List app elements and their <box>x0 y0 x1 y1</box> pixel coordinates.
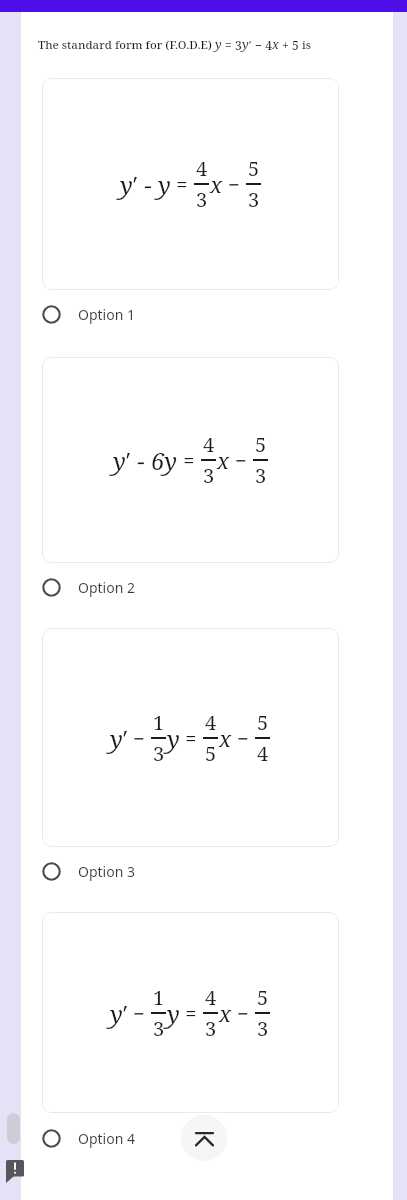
staticText: Option 3 <box>78 862 135 881</box>
staticText: 4 <box>257 740 269 767</box>
button[interactable]: Option 2 <box>42 567 339 607</box>
staticText: − 4 <box>252 37 272 53</box>
staticText: ′ <box>133 168 138 201</box>
staticText: The standard form for (F.O.D.E) <box>38 37 215 53</box>
button[interactable]: Option 3 <box>42 851 339 891</box>
staticText: − y <box>138 168 171 201</box>
staticText: 3 <box>248 186 260 213</box>
staticText: 3 <box>153 740 165 767</box>
staticText: − <box>232 725 254 752</box>
staticText: 1 <box>153 984 165 1011</box>
staticText: x <box>219 998 232 1028</box>
staticText: 3 <box>257 1015 269 1042</box>
staticText: y <box>110 997 123 1030</box>
staticText: = 3 <box>222 37 242 53</box>
staticText: − <box>232 1000 254 1027</box>
staticText: 4 <box>203 431 215 458</box>
button[interactable]: y <box>42 628 339 847</box>
staticText: 4 <box>205 709 217 736</box>
staticText: = <box>180 725 202 752</box>
staticText: + 5 <box>279 37 302 53</box>
staticText: 4 <box>205 984 217 1011</box>
staticText: y <box>242 36 249 53</box>
staticText: is <box>302 37 312 53</box>
staticText: Option 1 <box>78 305 135 324</box>
staticText: 5 <box>248 155 260 182</box>
staticText: x <box>272 36 279 53</box>
button[interactable]: y <box>42 912 339 1113</box>
staticText: ′ <box>123 722 128 755</box>
staticText: y <box>167 997 180 1030</box>
staticText: x <box>210 169 223 199</box>
button[interactable]: Option 1 <box>42 294 339 334</box>
staticText: 5 <box>205 740 217 767</box>
button[interactable]: Option 4 <box>42 1129 135 1148</box>
staticText: ′ <box>126 444 131 477</box>
staticText: 5 <box>257 709 269 736</box>
staticText: 1 <box>153 709 165 736</box>
staticText: 3 <box>153 1015 165 1042</box>
staticText: − <box>230 447 252 474</box>
staticText: 3 <box>203 462 215 489</box>
staticText: y <box>215 36 222 53</box>
staticText: = <box>171 171 193 198</box>
staticText: 5 <box>257 984 269 1011</box>
staticText: x <box>219 723 232 753</box>
staticText: = <box>180 1000 202 1027</box>
button[interactable]: y <box>42 357 339 563</box>
staticText: 3 <box>196 186 208 213</box>
button[interactable]: Scroll to top <box>181 1115 227 1161</box>
staticText: ′ <box>123 997 128 1030</box>
staticText: y <box>167 722 180 755</box>
staticText: ′ <box>249 37 252 53</box>
staticText: Option 2 <box>78 578 135 597</box>
staticText: 3 <box>205 1015 217 1042</box>
button[interactable]: y <box>42 78 339 290</box>
staticText: y <box>120 168 133 201</box>
staticText: y <box>113 444 126 477</box>
staticText: − <box>128 1000 150 1027</box>
staticText: 4 <box>196 155 208 182</box>
staticText: y <box>110 722 123 755</box>
staticText: 3 <box>255 462 267 489</box>
staticText: − <box>128 725 150 752</box>
staticText: = <box>178 447 200 474</box>
staticText: 5 <box>255 431 267 458</box>
staticText: Option 4 <box>78 1129 135 1148</box>
staticText: x <box>217 445 230 475</box>
staticText: − <box>223 171 245 198</box>
staticText: − 6y <box>131 444 178 477</box>
